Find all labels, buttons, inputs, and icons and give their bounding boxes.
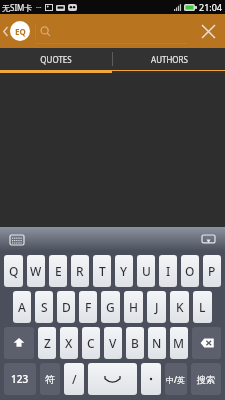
staticText: H [129,299,138,315]
staticText: Q [9,263,19,279]
button[interactable]: H [124,291,143,323]
staticText: D [62,299,71,315]
staticText: E [55,263,62,279]
button[interactable]: L [193,291,212,323]
staticText: ··· [36,3,42,13]
staticText: J [155,299,159,315]
staticText: / [72,371,77,387]
staticText: O [185,263,195,279]
staticText: W [30,263,42,279]
staticText: 搜索 [197,374,215,385]
button[interactable]: T [93,255,111,287]
staticText: P [208,263,216,279]
staticText: K [176,299,184,315]
button[interactable]: Space [88,363,137,395]
staticText: X [65,335,73,351]
button[interactable]: 符 [40,363,60,395]
button[interactable]: S [35,291,53,323]
button[interactable]: Y [115,255,133,287]
button[interactable]: 搜索 [191,363,221,395]
staticText: 符 [45,373,55,386]
staticText: Z [44,335,51,351]
button[interactable]: X [60,327,78,359]
button[interactable]: Shift [4,327,34,359]
button[interactable]: V [104,327,122,359]
button[interactable]: QUOTES [0,48,112,70]
button[interactable]: Backspace [192,327,221,359]
button[interactable]: U [137,255,155,287]
staticText: U [142,263,151,279]
staticText: N [152,335,162,351]
button[interactable]: A [13,291,31,323]
staticText: Y [120,263,128,279]
staticText: V [109,335,117,351]
button[interactable]: E [49,255,67,287]
staticText: 21:04 [199,1,223,13]
button[interactable]: J [147,291,166,323]
staticText: L [199,299,206,315]
staticText: A [18,299,26,315]
button[interactable]: W [27,255,45,287]
button[interactable]: Close [191,14,225,48]
staticText: 中/英 [166,374,186,385]
button[interactable]: Z [38,327,56,359]
button[interactable]: Period [141,363,161,395]
staticText: S [41,299,48,315]
staticText: R [76,263,84,279]
button[interactable]: Q [4,255,23,287]
button[interactable]: Hide keyboard [199,231,217,249]
staticText: QUOTES [40,54,72,65]
button[interactable]: / [64,363,84,395]
staticText: M [173,335,185,351]
staticText: 123 [11,372,29,386]
button[interactable]: P [203,255,221,287]
button[interactable]: G [101,291,120,323]
button[interactable]: O [181,255,199,287]
button[interactable]: AUTHORS [113,48,225,70]
staticText: C [87,335,95,351]
button[interactable]: D [57,291,75,323]
staticText: 无SIM卡 [2,2,33,13]
button[interactable]: N [148,327,166,359]
button[interactable]: K [170,291,189,323]
staticText: T [99,263,106,279]
button[interactable]: I [159,255,177,287]
button[interactable]: R [71,255,89,287]
button[interactable]: C [82,327,100,359]
button[interactable]: Back [0,14,35,48]
button[interactable]: M [170,327,188,359]
staticText: I [166,263,171,279]
button[interactable]: B [126,327,144,359]
button[interactable]: 中/英 [165,363,187,395]
staticText: EQ [15,26,26,37]
staticText: B [131,335,139,351]
button[interactable]: Keyboard settings [8,231,26,249]
staticText: G [106,299,115,315]
button[interactable]: 123 [4,363,36,395]
button[interactable]: F [79,291,97,323]
staticText: AUTHORS [151,54,188,65]
staticText: F [85,299,92,315]
